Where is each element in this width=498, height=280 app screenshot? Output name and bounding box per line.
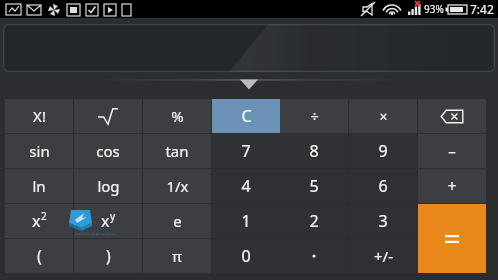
- button[interactable]: 2: [280, 204, 348, 238]
- staticText: x: [101, 210, 110, 232]
- button[interactable]: x: [5, 204, 73, 238]
- button[interactable]: 7: [212, 134, 280, 168]
- staticText: tan: [165, 141, 189, 161]
- button[interactable]: X!: [5, 99, 73, 133]
- staticText: 6: [378, 175, 388, 197]
- button[interactable]: 5: [280, 169, 348, 203]
- button[interactable]: sin: [5, 134, 73, 168]
- staticText: 0: [241, 245, 251, 267]
- staticText: 4: [241, 175, 251, 197]
- button[interactable]: C: [212, 99, 280, 133]
- staticText: y: [110, 209, 116, 223]
- button[interactable]: +: [418, 169, 486, 203]
- button[interactable]: (: [5, 239, 73, 273]
- button[interactable]: 3: [349, 204, 417, 238]
- button[interactable]: e: [143, 204, 211, 238]
- staticText: 7: [241, 140, 251, 162]
- button[interactable]: cos: [74, 134, 142, 168]
- staticText: 2: [309, 210, 319, 232]
- button[interactable]: 8: [280, 134, 348, 168]
- staticText: (: [37, 245, 42, 267]
- button[interactable]: ln: [5, 169, 73, 203]
- button[interactable]: 9: [349, 134, 417, 168]
- staticText: 93%: [424, 2, 444, 16]
- staticText: 3: [378, 210, 388, 232]
- button[interactable]: [3, 24, 495, 72]
- staticText: mobiles.applicationes: [75, 231, 116, 236]
- button[interactable]: Delete: [418, 99, 486, 133]
- button[interactable]: ): [74, 239, 142, 273]
- staticText: +/-: [374, 246, 393, 266]
- staticText: π: [172, 246, 182, 266]
- button[interactable]: +/-: [349, 239, 417, 273]
- staticText: 8: [309, 140, 319, 162]
- button[interactable]: 0: [212, 239, 280, 273]
- staticText: –: [448, 141, 456, 161]
- staticText: X!: [33, 106, 46, 126]
- button[interactable]: log: [74, 169, 142, 203]
- button[interactable]: 1: [212, 204, 280, 238]
- button[interactable]: tan: [143, 134, 211, 168]
- staticText: 5: [309, 175, 319, 197]
- button[interactable]: x: [74, 204, 142, 238]
- staticText: ln: [32, 176, 46, 196]
- button[interactable]: ×: [349, 99, 417, 133]
- button[interactable]: [418, 204, 486, 273]
- button[interactable]: –: [418, 134, 486, 168]
- button[interactable]: 1/x: [143, 169, 211, 203]
- staticText: log: [97, 176, 120, 196]
- staticText: 9: [378, 140, 388, 162]
- button[interactable]: [280, 239, 348, 273]
- button[interactable]: 6: [349, 169, 417, 203]
- button[interactable]: 4: [212, 169, 280, 203]
- button[interactable]: %: [143, 99, 211, 133]
- staticText: sin: [29, 141, 50, 161]
- staticText: ): [106, 245, 111, 267]
- staticText: e: [173, 211, 182, 231]
- staticText: +: [447, 175, 457, 197]
- staticText: ×: [379, 107, 388, 126]
- staticText: 1/x: [166, 176, 189, 196]
- staticText: 7:42: [470, 1, 494, 17]
- button[interactable]: Square root: [74, 99, 142, 133]
- staticText: ÷: [310, 106, 319, 126]
- staticText: 1: [241, 210, 251, 232]
- button[interactable]: ÷: [280, 99, 348, 133]
- staticText: %: [171, 106, 184, 126]
- button[interactable]: π: [143, 239, 211, 273]
- staticText: cos: [96, 141, 120, 161]
- staticText: C: [241, 105, 252, 127]
- button[interactable]: Show history: [0, 74, 498, 92]
- staticText: x: [32, 210, 41, 232]
- staticText: 2: [41, 209, 47, 223]
